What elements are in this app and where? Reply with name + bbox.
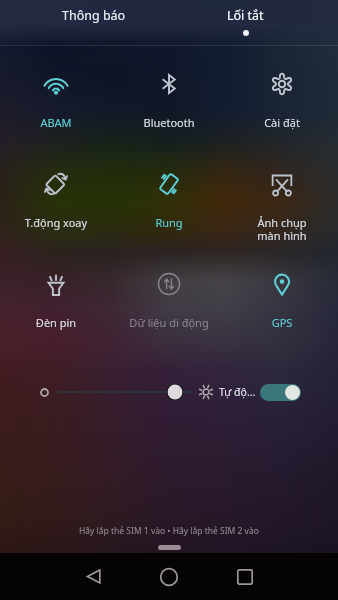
button[interactable]: Lối tắt [190, 0, 300, 46]
button[interactable]: Minimum brightness [34, 382, 54, 402]
button[interactable]: Bluetooth [112, 46, 225, 146]
staticText: Thông báo [62, 7, 126, 24]
staticText: Ảnh chụp màn hình [245, 215, 319, 243]
staticText: Hãy lắp thẻ SIM 1 vào • Hãy lắp thẻ SIM … [79, 525, 259, 537]
button[interactable]: Back [69, 553, 117, 600]
button[interactable]: Home [145, 553, 193, 600]
button[interactable]: Dữ liệu di động [112, 246, 225, 346]
staticText: T.động xoay [3, 215, 109, 230]
button[interactable]: Auto brightness toggle [260, 384, 301, 401]
button[interactable]: Ảnh chụp màn hình [225, 146, 338, 246]
staticText: Đèn pin [3, 315, 109, 330]
button[interactable]: Đèn pin [0, 246, 112, 346]
staticText: Bluetooth [116, 115, 222, 130]
button[interactable]: Recents [221, 553, 269, 600]
staticText: Dữ liệu di động [116, 315, 222, 330]
button[interactable]: Cài đặt [225, 46, 338, 146]
staticText: Lối tắt [227, 7, 264, 24]
staticText: GPS [229, 315, 335, 330]
button[interactable]: Brightness slider [56, 381, 193, 403]
staticText: ABAM [3, 115, 109, 130]
button[interactable]: T.động xoay [0, 146, 112, 246]
button[interactable]: ABAM [0, 46, 112, 146]
button[interactable]: Thông báo [38, 0, 149, 46]
staticText: Rung [116, 215, 222, 230]
button[interactable]: GPS [225, 246, 338, 346]
button[interactable]: Rung [112, 146, 225, 246]
staticText: Tự độ… [219, 385, 256, 399]
staticText: Cài đặt [229, 115, 335, 130]
